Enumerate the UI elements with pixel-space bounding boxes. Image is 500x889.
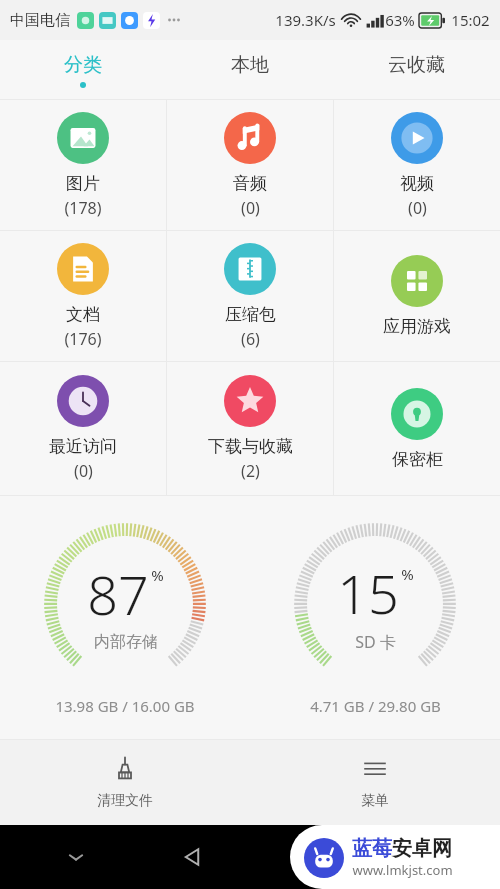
staticText: SD 卡 (355, 631, 396, 653)
staticText: 4.71 GB / 29.80 GB (310, 696, 441, 716)
staticText: 63% (385, 10, 415, 30)
staticText: 视频 (400, 173, 434, 194)
button[interactable]: 最近访问 (0, 362, 166, 495)
button[interactable]: 图片 (0, 100, 166, 230)
staticText: 云收藏 (388, 53, 445, 77)
staticText: (0) (408, 197, 427, 219)
button[interactable]: 87 (0, 518, 250, 716)
staticText: 清理文件 (97, 792, 153, 810)
button[interactable]: 菜单 (250, 740, 500, 825)
staticText: (176) (64, 328, 102, 350)
button[interactable]: Recents (366, 825, 482, 889)
button[interactable]: Home (250, 825, 366, 889)
staticText: 下载与收藏 (208, 436, 293, 457)
button[interactable]: 文档 (0, 231, 166, 361)
staticText: (178) (64, 197, 102, 219)
staticText: (0) (74, 460, 93, 482)
staticText: % (401, 564, 414, 584)
staticText: 菜单 (361, 792, 389, 810)
staticText: % (151, 565, 164, 585)
button[interactable]: 下载与收藏 (167, 362, 333, 495)
button[interactable]: 视频 (334, 100, 500, 230)
staticText: 中国电信 (10, 11, 70, 30)
staticText: 本地 (231, 53, 269, 77)
staticText: www.lmkjst.com (352, 861, 453, 879)
staticText: 音频 (233, 173, 267, 194)
staticText: 蓝莓 (352, 836, 392, 861)
staticText: 应用游戏 (383, 316, 451, 337)
button[interactable]: Hide (18, 825, 134, 889)
staticText: 139.3K/s (275, 10, 336, 30)
button[interactable]: 分类 (0, 40, 166, 100)
staticText: 压缩包 (225, 304, 276, 325)
button[interactable]: 保密柜 (334, 362, 500, 495)
staticText: 安卓网 (392, 836, 452, 861)
button[interactable]: 音频 (167, 100, 333, 230)
button[interactable]: 应用游戏 (334, 231, 500, 361)
button[interactable]: 清理文件 (0, 740, 250, 825)
staticText: 13.98 GB / 16.00 GB (55, 696, 195, 716)
staticText: (2) (241, 460, 260, 482)
staticText: 保密柜 (392, 449, 443, 470)
button[interactable]: 本地 (166, 40, 333, 100)
button[interactable]: 压缩包 (167, 231, 333, 361)
staticText: 分类 (64, 53, 102, 77)
staticText: 15 (337, 556, 399, 630)
staticText: (6) (241, 328, 260, 350)
button[interactable]: 云收藏 (333, 40, 500, 100)
staticText: 87 (87, 557, 149, 631)
staticText: 文档 (66, 304, 100, 325)
staticText: 最近访问 (49, 436, 117, 457)
staticText: 15:02 (451, 10, 490, 30)
button[interactable]: Back (134, 825, 250, 889)
staticText: 内部存储 (94, 632, 158, 652)
staticText: (0) (241, 197, 260, 219)
staticText: 图片 (66, 173, 100, 194)
button[interactable]: 15 (250, 518, 500, 716)
